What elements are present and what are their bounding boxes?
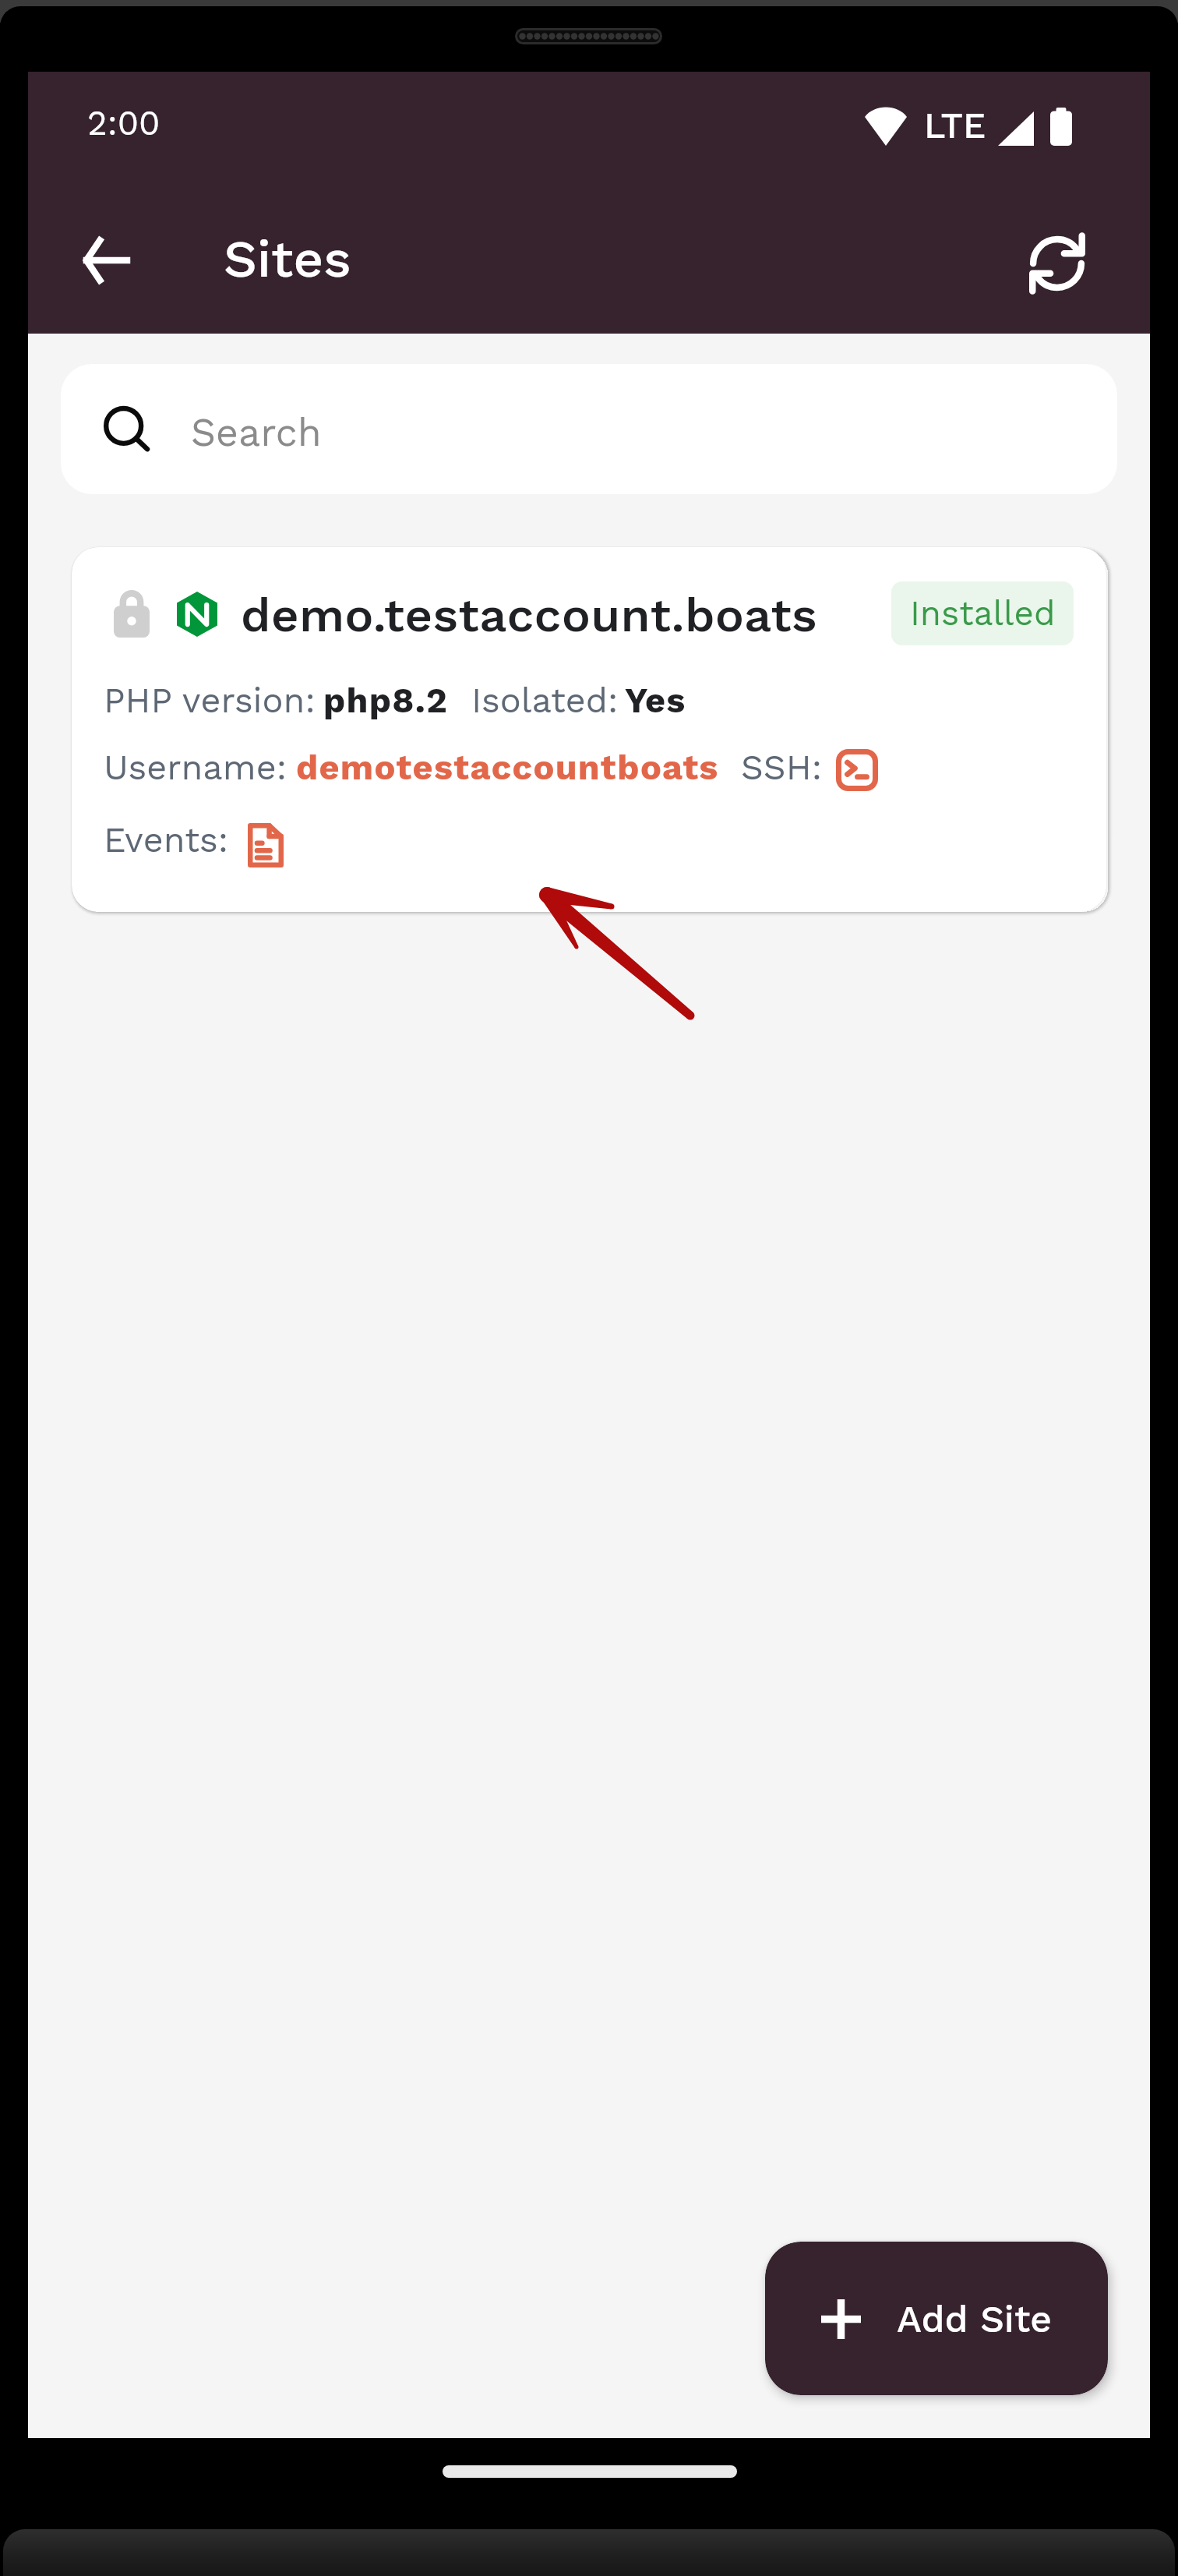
staticText: LTE [924, 104, 986, 147]
button[interactable]: Installed [891, 581, 1074, 645]
button[interactable]: Add Site [765, 2242, 1108, 2395]
button[interactable]: Search [61, 364, 1117, 494]
button[interactable]: View events [248, 823, 284, 868]
button[interactable]: demo.testaccount.boats [72, 547, 1106, 912]
button[interactable]: Back [61, 217, 148, 304]
staticText: Username: [104, 747, 287, 788]
staticText: demotestaccountboats [296, 747, 719, 788]
button[interactable]: Open SSH terminal [836, 749, 878, 791]
staticText: Isolated: [471, 680, 619, 721]
staticText: php8.2 [323, 680, 449, 721]
staticText: SSH: [741, 747, 823, 788]
staticText: Installed [910, 593, 1056, 634]
staticText: Search [191, 409, 322, 455]
staticText: demo.testaccount.boats [241, 587, 818, 643]
staticText: 2:00 [87, 103, 160, 143]
staticText: Add Site [897, 2297, 1053, 2341]
staticText: Yes [625, 680, 686, 721]
staticText: Sites [224, 228, 351, 290]
staticText: PHP version: [104, 680, 316, 721]
button[interactable]: Refresh [1014, 220, 1101, 307]
staticText: Events: [104, 819, 229, 860]
